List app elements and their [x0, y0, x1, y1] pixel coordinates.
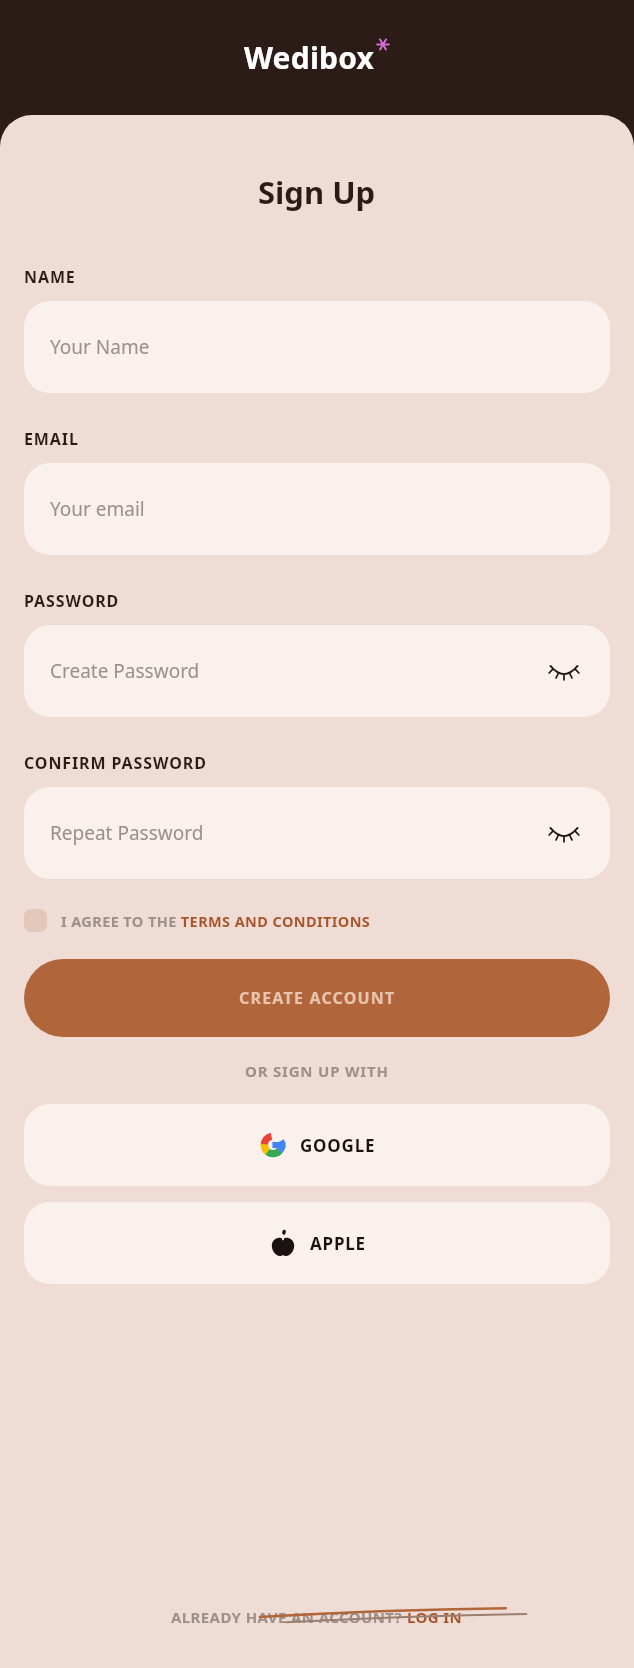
button[interactable]: Show password — [544, 813, 584, 853]
button[interactable]: I AGREE TO THE TERMS AND CONDITIONS — [24, 909, 610, 932]
staticText: CREATE ACCOUNT — [239, 987, 396, 1009]
staticText: GOOGLE — [300, 1134, 376, 1157]
staticText: NAME — [24, 266, 76, 288]
button[interactable]: Show password — [544, 651, 584, 691]
staticText: Sign Up — [258, 171, 376, 213]
staticText: EMAIL — [24, 428, 79, 450]
staticText: ALREADY HAVE AN ACCOUNT? — [171, 1607, 407, 1627]
staticText: Your Name — [50, 334, 150, 360]
staticText: Repeat Password — [50, 820, 204, 846]
button[interactable]: Your Name — [24, 301, 610, 393]
button[interactable]: CREATE ACCOUNT — [24, 959, 610, 1037]
button[interactable]: Create Password — [24, 625, 610, 717]
button[interactable]: ALREADY HAVE AN ACCOUNT? — [171, 1607, 463, 1627]
button[interactable]: Repeat Password — [24, 787, 610, 879]
staticText: APPLE — [310, 1232, 366, 1255]
button[interactable]: Your email — [24, 463, 610, 555]
staticText: I AGREE TO THE TERMS AND CONDITIONS — [61, 911, 371, 931]
staticText: PASSWORD — [24, 590, 120, 612]
button[interactable]: APPLE — [24, 1202, 610, 1284]
button[interactable]: GOOGLE — [24, 1104, 610, 1186]
staticText: Your email — [50, 496, 145, 522]
staticText: Wedibox — [244, 37, 375, 78]
staticText: LOG IN — [407, 1607, 463, 1627]
staticText: Create Password — [50, 658, 200, 684]
staticText: OR SIGN UP WITH — [245, 1061, 389, 1081]
staticText: CONFIRM PASSWORD — [24, 752, 207, 774]
